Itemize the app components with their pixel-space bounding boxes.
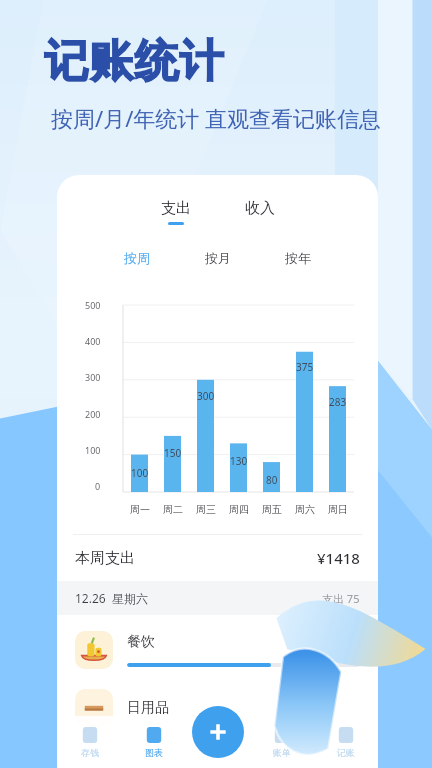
staticText: 周日 (328, 503, 348, 516)
button[interactable]: 日用品 (57, 689, 378, 727)
staticText: 500 (85, 299, 101, 311)
staticText: 支出 75 (322, 591, 360, 606)
staticText: 80 (266, 473, 278, 487)
staticText: 300 (197, 389, 215, 403)
button[interactable]: 存钱 (57, 716, 122, 768)
staticText: 周六 (295, 503, 315, 516)
staticText: 记账 (337, 747, 355, 758)
button[interactable]: 记账 (314, 716, 378, 768)
staticText: 餐饮 (127, 633, 155, 651)
staticText: 周五 (262, 503, 282, 516)
staticText: 按年 (285, 250, 311, 266)
staticText: 12.26 星期六 (75, 590, 148, 606)
staticText: 图表 (145, 747, 163, 758)
staticText: 周三 (196, 503, 216, 516)
staticText: 按月 (205, 250, 231, 266)
staticText: 150 (164, 446, 182, 460)
staticText: 周四 (229, 503, 249, 516)
staticText: 0 (95, 480, 101, 492)
staticText: 记账统计 (44, 34, 224, 89)
button[interactable]: 餐饮 (57, 625, 378, 675)
staticText: 存钱 (81, 747, 99, 758)
staticText: 400 (85, 335, 101, 347)
staticText: 周二 (163, 503, 183, 516)
staticText: 收入 (245, 199, 275, 218)
button[interactable]: Add record (192, 706, 244, 758)
staticText: 130 (230, 454, 248, 468)
staticText: ¥1418 (317, 548, 360, 568)
staticText: 日用品 (127, 699, 169, 717)
button[interactable]: 12.26 星期六 (57, 581, 378, 615)
button[interactable]: 按周 (114, 247, 160, 269)
button[interactable]: 收入 (229, 197, 291, 220)
button[interactable]: 本周支出 (57, 535, 378, 581)
button[interactable]: 按月 (195, 247, 241, 269)
staticText: 支出 (161, 199, 191, 218)
staticText: 375 (296, 360, 314, 374)
staticText: 按周 (124, 250, 150, 266)
staticText: 100 (85, 444, 101, 456)
staticText: 账单 (273, 747, 291, 758)
button[interactable]: 账单 (250, 716, 314, 768)
staticText: 283 (329, 395, 347, 409)
staticText: 本周支出 (75, 549, 135, 568)
button[interactable]: 按年 (275, 247, 321, 269)
staticText: 周一 (130, 503, 150, 516)
staticText: 300 (85, 371, 101, 383)
button[interactable]: 支出 (145, 197, 207, 227)
button[interactable]: 图表 (122, 716, 186, 768)
staticText: 按周/月/年统计 直观查看记账信息 (20, 103, 412, 133)
staticText: 200 (85, 408, 101, 420)
staticText: 100 (131, 466, 149, 480)
